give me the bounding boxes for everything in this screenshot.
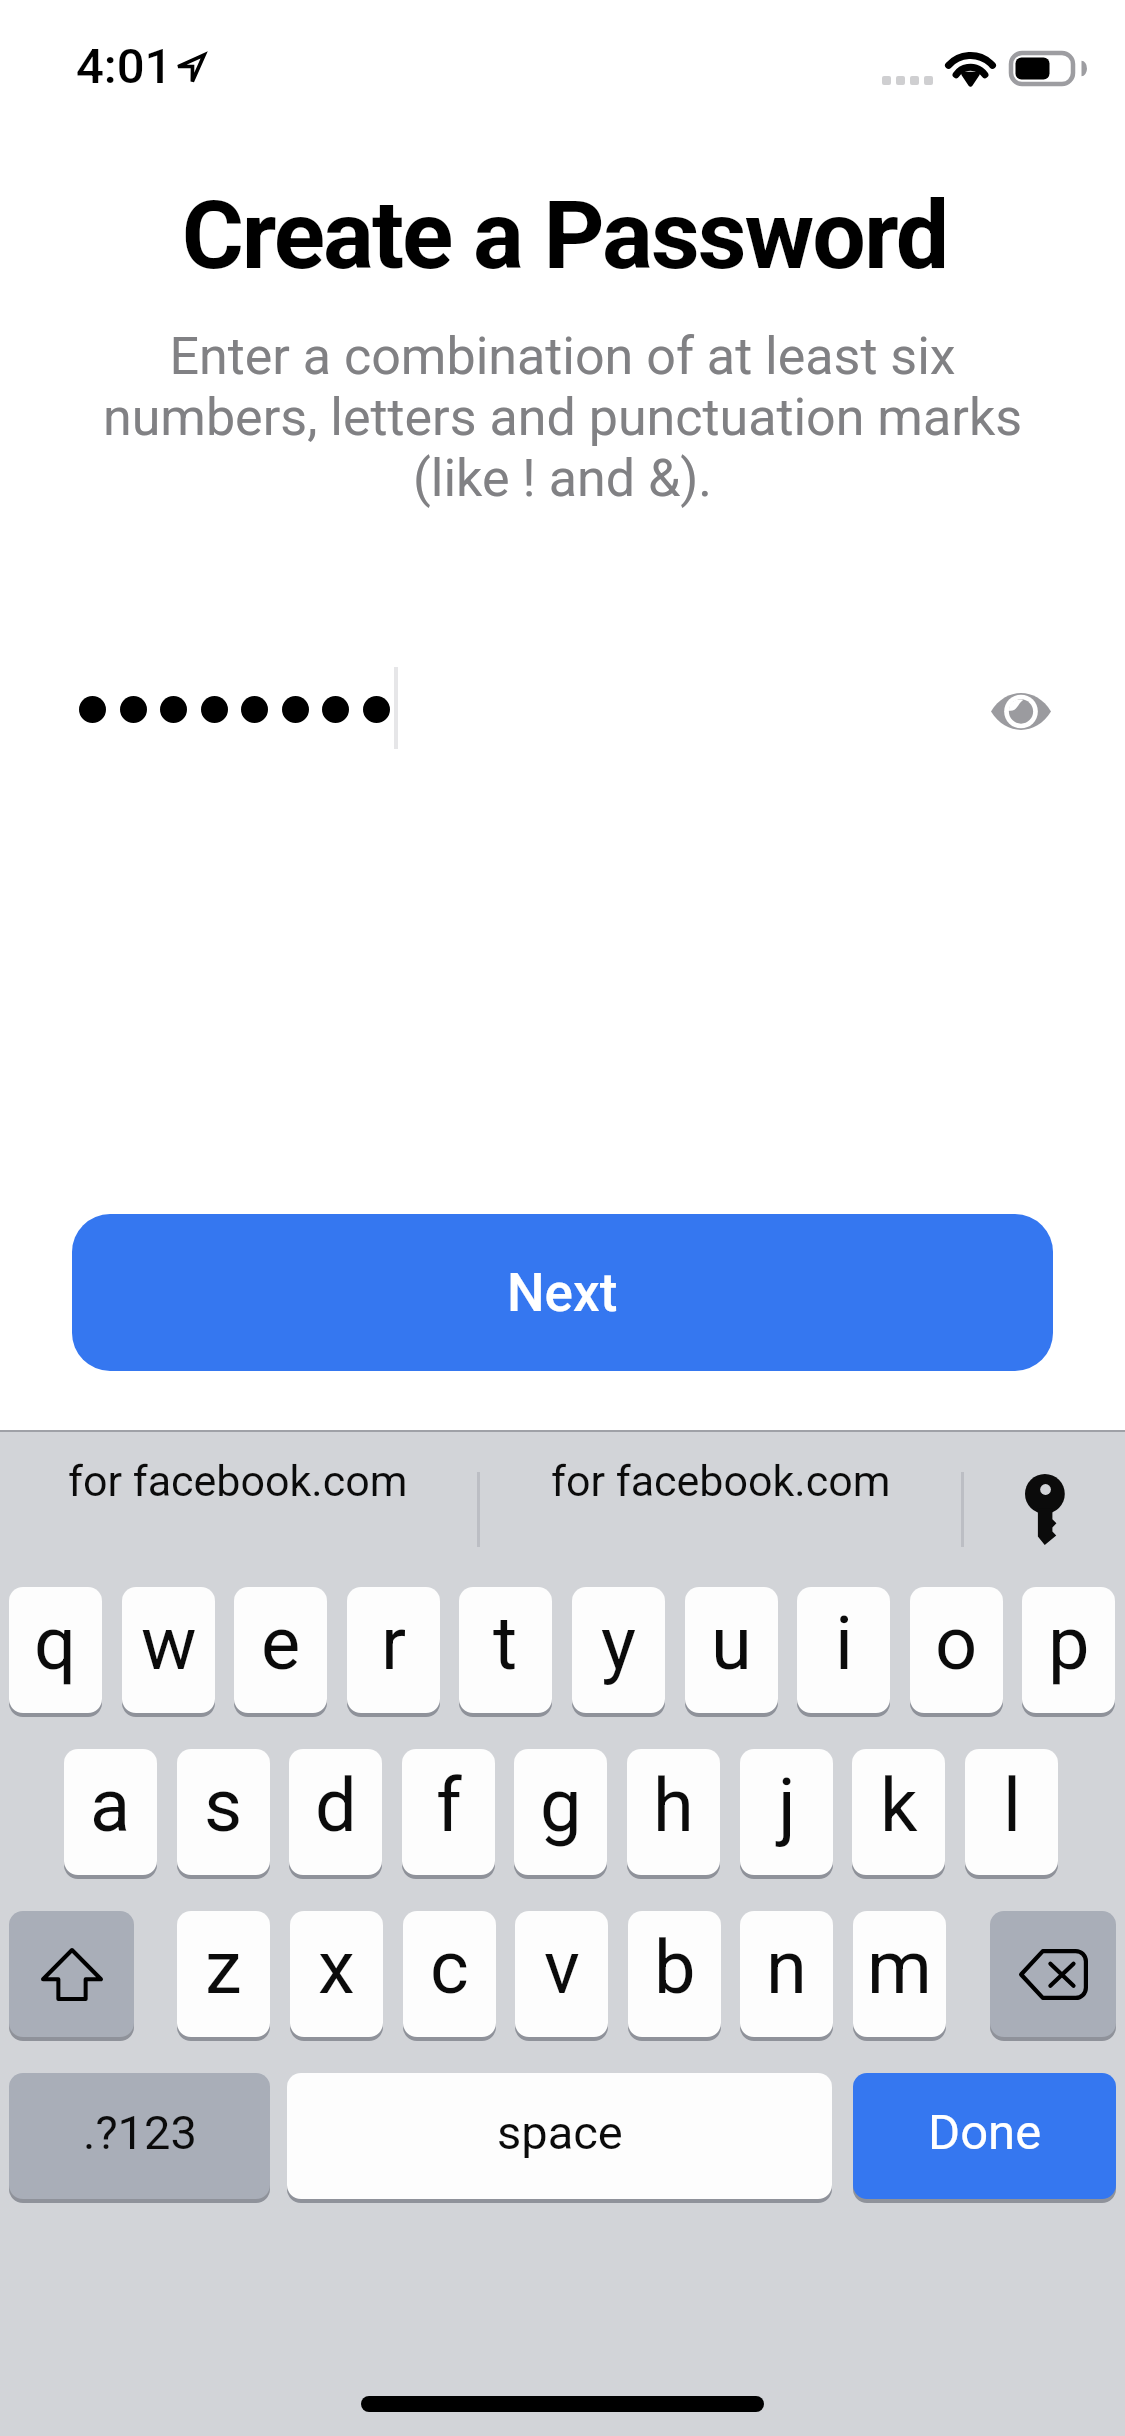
staticText: u xyxy=(711,1600,752,1687)
button[interactable]: Backspace xyxy=(990,1911,1116,2037)
staticText: a xyxy=(90,1762,131,1849)
staticText: for facebook.com xyxy=(551,1456,891,1506)
staticText: c xyxy=(430,1924,469,2011)
staticText: g xyxy=(540,1762,582,1849)
button[interactable]: q xyxy=(9,1587,102,1713)
button[interactable]: .?123 xyxy=(9,2073,270,2199)
button[interactable]: h xyxy=(627,1749,720,1875)
staticText: for facebook.com xyxy=(68,1456,408,1506)
staticText: p xyxy=(1048,1600,1090,1687)
button[interactable]: o xyxy=(910,1587,1003,1713)
button[interactable]: f xyxy=(402,1749,495,1875)
button[interactable]: i xyxy=(797,1587,890,1713)
button[interactable]: n xyxy=(740,1911,833,2037)
button[interactable]: Passwords xyxy=(1014,1447,1075,1571)
button[interactable]: t xyxy=(459,1587,552,1713)
staticText: s xyxy=(204,1762,243,1849)
staticText: i xyxy=(835,1600,853,1687)
staticText: h xyxy=(653,1762,694,1849)
button[interactable]: b xyxy=(628,1911,721,2037)
button[interactable]: u xyxy=(685,1587,778,1713)
button[interactable]: r xyxy=(347,1587,440,1713)
staticText: l xyxy=(1003,1762,1021,1849)
button[interactable]: d xyxy=(289,1749,382,1875)
staticText: b xyxy=(654,1924,696,2011)
staticText: m xyxy=(867,1924,932,2011)
staticText: r xyxy=(381,1600,407,1687)
staticText: v xyxy=(544,1924,580,2011)
staticText: t xyxy=(493,1600,518,1687)
button[interactable]: j xyxy=(740,1749,833,1875)
button[interactable]: z xyxy=(177,1911,270,2037)
staticText: f xyxy=(436,1762,462,1849)
button[interactable]: g xyxy=(514,1749,607,1875)
button[interactable]: p xyxy=(1022,1587,1115,1713)
button[interactable]: w xyxy=(122,1587,215,1713)
staticText: o xyxy=(935,1600,978,1687)
staticText: x xyxy=(318,1924,355,2011)
staticText: d xyxy=(315,1762,357,1849)
staticText: Enter a combination of at least six numb… xyxy=(92,326,1033,509)
button[interactable]: s xyxy=(177,1749,270,1875)
staticText: j xyxy=(778,1762,796,1849)
staticText: q xyxy=(34,1600,77,1687)
button[interactable]: m xyxy=(853,1911,946,2037)
staticText: Done xyxy=(928,2104,1042,2161)
button[interactable]: k xyxy=(852,1749,945,1875)
button[interactable]: l xyxy=(965,1749,1058,1875)
button[interactable]: Password xyxy=(70,650,950,770)
button[interactable]: e xyxy=(234,1587,327,1713)
staticText: 4:01 xyxy=(76,38,173,95)
staticText: e xyxy=(261,1600,301,1687)
button[interactable]: Show password xyxy=(966,656,1076,766)
staticText: w xyxy=(141,1600,197,1687)
button[interactable]: y xyxy=(572,1587,665,1713)
staticText: y xyxy=(601,1600,637,1687)
button[interactable]: x xyxy=(290,1911,383,2037)
staticText: k xyxy=(880,1762,918,1849)
button[interactable]: a xyxy=(64,1749,157,1875)
button[interactable]: Next xyxy=(72,1214,1053,1371)
button[interactable]: Done xyxy=(853,2073,1116,2199)
staticText: n xyxy=(766,1924,807,2011)
staticText: z xyxy=(205,1924,242,2011)
button[interactable]: Shift xyxy=(9,1911,134,2037)
staticText: Create a Password xyxy=(2,180,1125,291)
button[interactable]: v xyxy=(515,1911,608,2037)
button[interactable]: c xyxy=(403,1911,496,2037)
staticText: Next xyxy=(507,1262,618,1324)
staticText: space xyxy=(497,2105,623,2160)
staticText: .?123 xyxy=(83,2105,197,2160)
button[interactable]: space xyxy=(287,2073,832,2199)
